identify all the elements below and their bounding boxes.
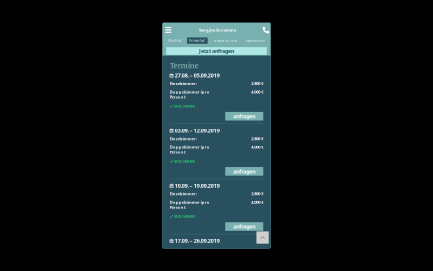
staticText: Doppelzimmer (pro	[170, 199, 210, 205]
button[interactable]: Reiseverlauf	[187, 37, 208, 44]
staticText: 2.800 €	[251, 191, 263, 196]
staticText: 4.000 €	[251, 199, 263, 205]
staticText: Einzelzimmer:	[170, 191, 197, 196]
button[interactable]: anfragen	[225, 112, 263, 120]
staticText: Person):	[170, 149, 186, 155]
staticText: 2.800 €	[251, 136, 263, 141]
staticText: BUCHBAR	[174, 103, 195, 109]
button[interactable]: anfragen	[225, 167, 263, 176]
staticText: Termine	[170, 60, 199, 70]
staticText: anfragen	[233, 168, 255, 175]
staticText: 03.09. – 12.09.2019	[175, 127, 220, 134]
staticText: Jetzt anfragen	[199, 47, 234, 54]
staticText: 10.09. – 19.09.2019	[175, 182, 220, 189]
staticText: Person):	[170, 204, 186, 210]
staticText: Überblick	[168, 39, 181, 42]
button[interactable]: Scroll to top	[256, 231, 269, 244]
button[interactable]: Termine & Preise	[211, 37, 240, 44]
staticText: 4.000 €	[251, 144, 263, 150]
staticText: 2.800 €	[251, 81, 263, 86]
staticText: Einzelzimmer:	[170, 81, 197, 86]
staticText: 17.09. – 26.09.2019	[175, 237, 220, 244]
button[interactable]: Menu	[165, 24, 178, 36]
staticText: Person):	[170, 94, 186, 99]
staticText: 4.000 €	[251, 89, 263, 94]
staticText: Doppelzimmer (pro	[170, 89, 210, 94]
staticText: BUCHBAR	[174, 158, 195, 164]
staticText: Reiseverlauf	[189, 39, 205, 42]
button[interactable]: Impressionen	[244, 37, 267, 44]
staticText: anfragen	[233, 223, 255, 230]
staticText: 27.08. – 05.09.2019	[175, 72, 220, 79]
staticText: Sangjiva Sonadana	[199, 27, 236, 33]
button[interactable]: Call	[257, 24, 270, 36]
staticText: Impressionen	[246, 39, 265, 42]
staticText: BUCHBAR	[174, 214, 195, 219]
button[interactable]: anfragen	[225, 222, 263, 231]
button[interactable]: Überblick	[166, 37, 183, 44]
staticText: anfragen	[233, 113, 255, 120]
staticText: Termine & Preise	[214, 39, 238, 42]
staticText: Doppelzimmer (pro	[170, 144, 210, 150]
button[interactable]: Jetzt anfragen	[166, 47, 267, 55]
staticText: Einzelzimmer:	[170, 136, 197, 141]
